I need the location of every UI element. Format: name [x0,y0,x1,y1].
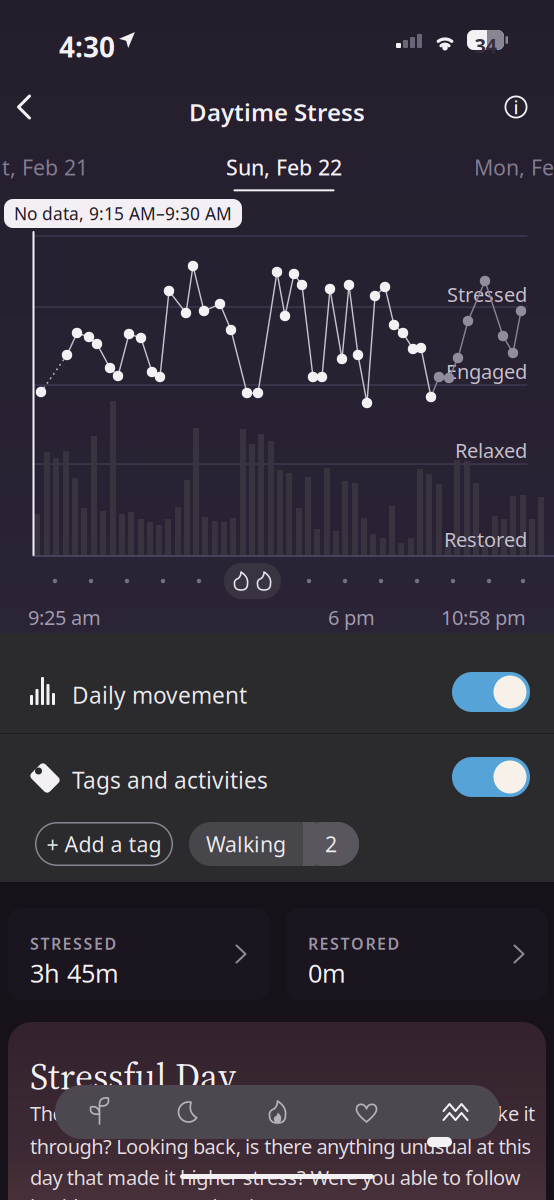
button[interactable]: Tags and activities [452,757,530,797]
staticText: 3h 45m [30,956,119,990]
staticText: Mon, Feb 2 [474,153,554,181]
staticText: 6 pm [328,604,375,631]
button[interactable]: Today [77,1090,121,1134]
button[interactable]: STRESSED [8,908,270,1000]
staticText: Stressed [447,281,527,308]
staticText: through? Looking back, is there anything… [30,1133,531,1160]
staticText: Sun, Feb 22 [226,153,342,181]
staticText: day that made it higher stress? Were you… [30,1164,521,1191]
staticText: Engaged [446,358,527,385]
staticText: No data, 9:15 AM–9:30 AM [14,202,232,225]
button[interactable]: Sun, Feb 22 [226,153,342,191]
button[interactable]: Info [496,87,536,127]
button[interactable]: Daily movement [452,672,530,712]
staticText: 4:30 [59,28,115,65]
staticText: Tags and activities [72,765,268,795]
staticText: STRESSED [30,933,116,954]
staticText: Daytime Stress [189,96,365,128]
button[interactable]: Monday, Feb 23 [474,153,554,181]
staticText: Stressful Day [30,1052,236,1101]
staticText: RESTORED [308,933,399,954]
staticText: 34 [474,32,496,59]
button[interactable]: Saturday, Feb 21 [2,153,88,181]
button[interactable]: Walking, 2 [189,822,359,866]
button[interactable]: Activity markers [224,563,281,599]
staticText: t, Feb 21 [2,153,88,181]
staticText: The stress was higher than normal. How d… [30,1100,535,1127]
staticText: it with extra restorative time? [30,1193,292,1200]
button[interactable]: Stress [433,1090,477,1134]
staticText: Relaxed [455,437,527,464]
staticText: Daily movement [72,680,247,710]
staticText: 0m [308,956,346,990]
staticText: + Add a tag [46,830,161,858]
staticText: 9:25 am [28,604,101,631]
button[interactable]: Activity [255,1090,299,1134]
staticText: Restored [444,526,527,553]
button[interactable]: Sleep [166,1090,210,1134]
button[interactable]: Heart [344,1090,388,1134]
button[interactable]: RESTORED [286,908,548,1000]
staticText: Walking [206,830,286,858]
staticText: 10:58 pm [441,604,526,631]
staticText: i [513,95,518,119]
button[interactable]: + Add a tag [35,822,173,866]
staticText: 2 [325,830,337,858]
